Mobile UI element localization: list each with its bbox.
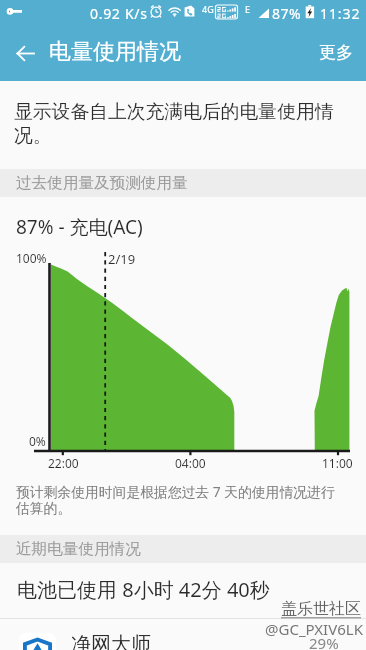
staticText: 盖乐世社区: [281, 599, 361, 619]
staticText: 显示设备自上次充满电后的电量使用情况。: [14, 100, 352, 148]
staticText: E: [245, 3, 251, 15]
staticText: 4G: [202, 3, 214, 15]
staticText: 04:00: [175, 455, 206, 471]
button[interactable]: 更多: [306, 26, 366, 81]
staticText: 过去使用量及预测使用量: [16, 173, 188, 193]
staticText: 29%: [309, 633, 339, 650]
staticText: 预计剩余使用时间是根据您过去 7 天的使用情况进行估算的。: [16, 482, 341, 517]
button[interactable]: 净网大师: [0, 619, 366, 650]
staticText: 11:32: [320, 4, 361, 23]
staticText: 11:00: [322, 455, 353, 471]
staticText: 净网大师: [71, 632, 151, 650]
staticText: 更多: [319, 42, 353, 63]
staticText: 22:00: [48, 455, 79, 471]
staticText: @GC_PXIV6LK: [265, 619, 363, 639]
staticText: 0.92 K/s: [90, 4, 148, 23]
staticText: 电池已使用 8小时 42分 40秒: [17, 576, 270, 603]
staticText: 87%: [272, 4, 302, 23]
staticText: 87% - 充电(AC): [16, 214, 143, 240]
staticText: 电量使用情况: [49, 38, 181, 66]
staticText: 2/19: [108, 250, 136, 268]
staticText: 100%: [16, 250, 47, 266]
staticText: 0%: [29, 433, 46, 449]
staticText: 近期电量使用情况: [16, 539, 141, 559]
button[interactable]: Back: [1, 29, 49, 77]
